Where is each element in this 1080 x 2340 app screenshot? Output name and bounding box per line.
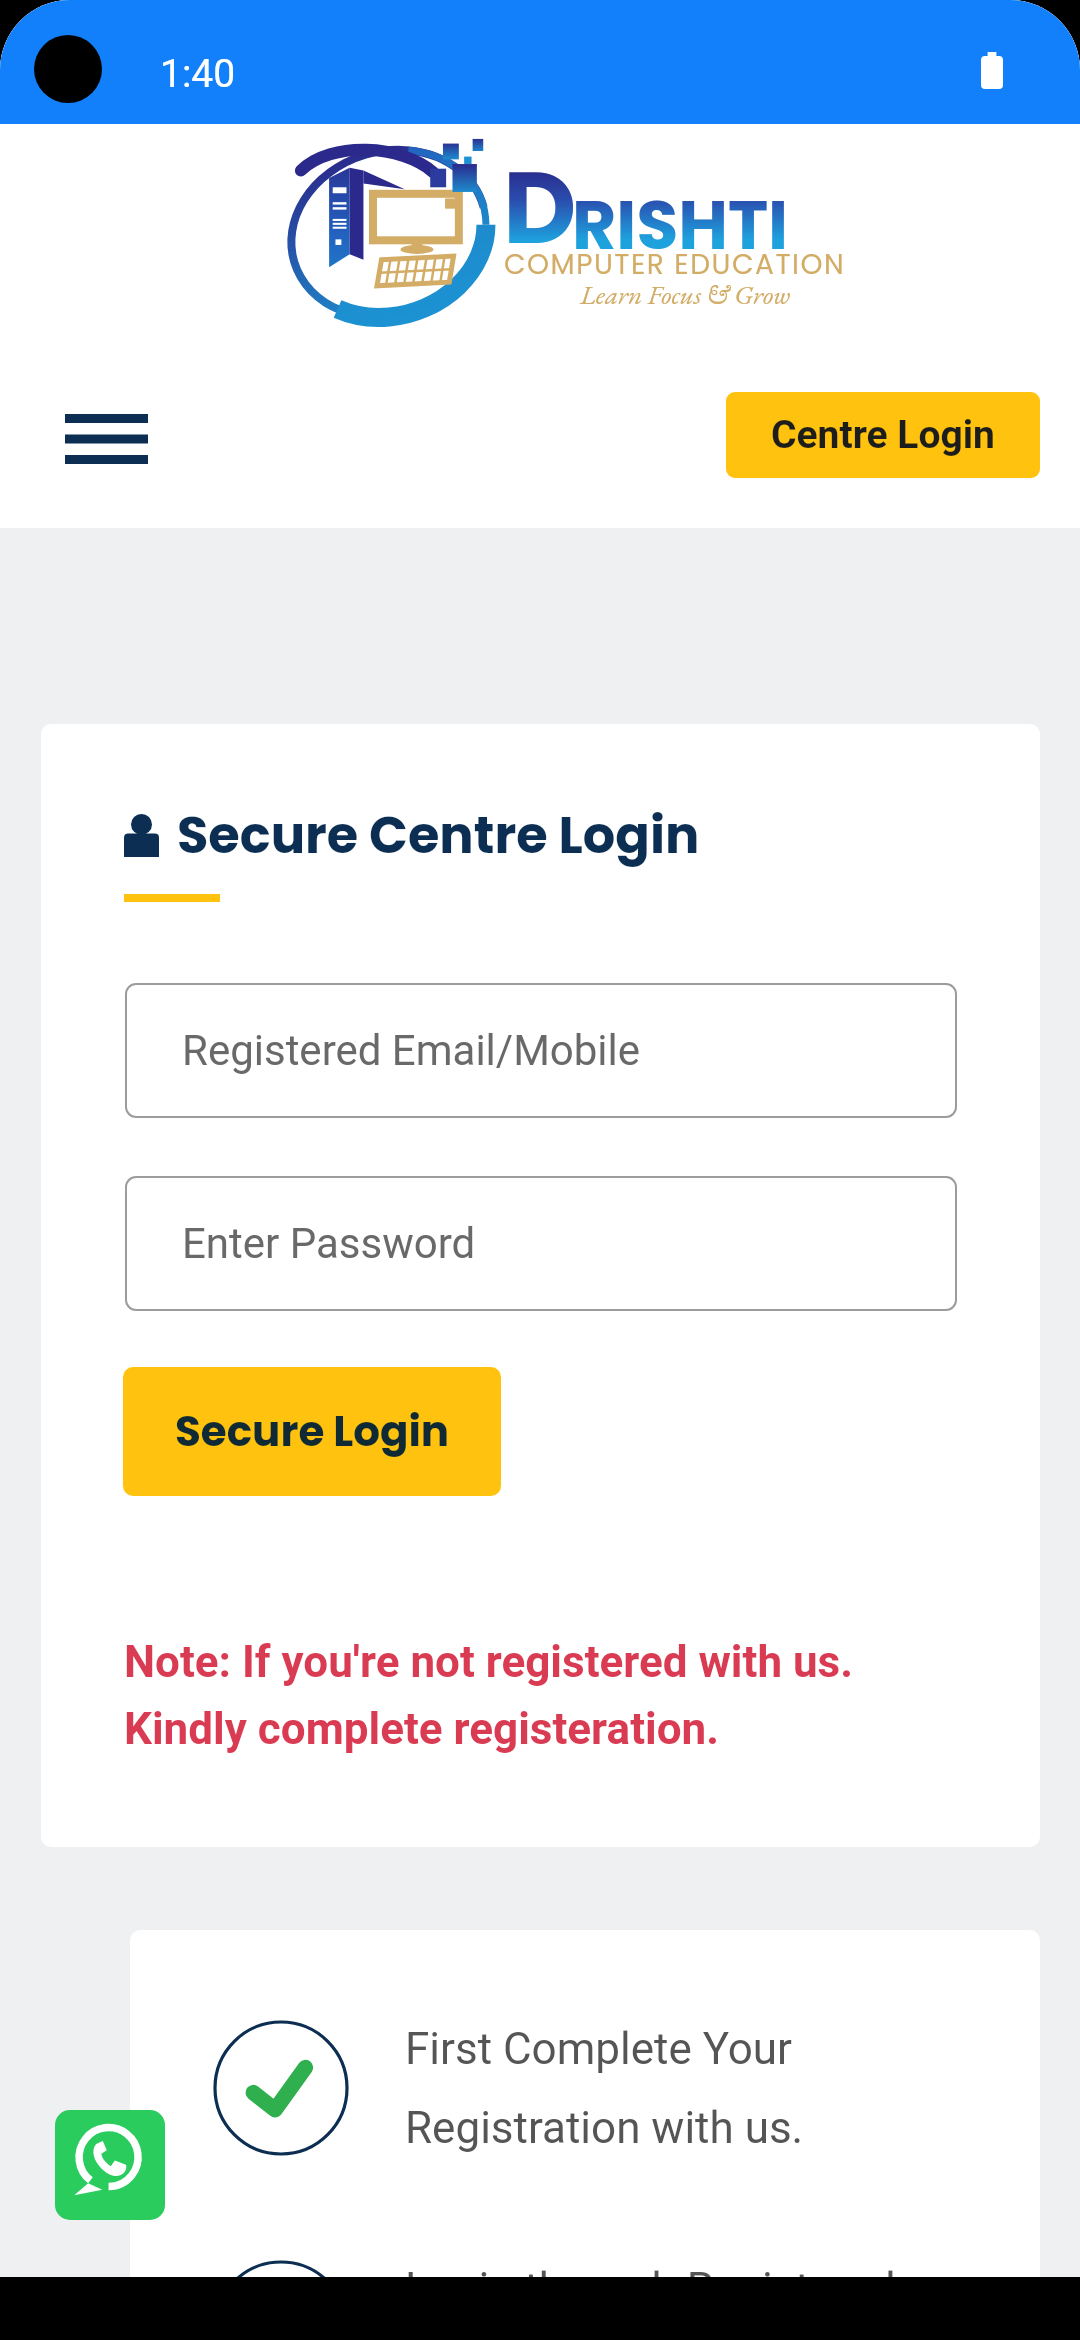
staticText: 1:40	[160, 51, 236, 97]
staticText: D	[503, 137, 577, 278]
staticText: COMPUTER EDUCATION	[504, 245, 846, 284]
button[interactable]: Centre Login	[726, 392, 1040, 478]
staticText: Registered Email/Mobile	[182, 1026, 641, 1075]
button[interactable]: Secure Login	[123, 1367, 501, 1496]
button[interactable]: Chat on WhatsApp	[55, 2110, 165, 2220]
staticText: Centre Login	[771, 412, 995, 458]
staticText: Learn Focus & Grow	[580, 277, 791, 312]
staticText: Login through Registered email id.	[405, 2263, 896, 2277]
staticText: Secure Login	[175, 1402, 450, 1461]
staticText: Enter Password	[182, 1219, 476, 1268]
staticText: Secure Centre Login	[177, 799, 700, 870]
staticText: Note: If you're not registered with us.	[124, 1636, 854, 1688]
staticText: RISHTI	[572, 178, 789, 273]
button[interactable]: Registered Email/Mobile	[125, 983, 957, 1118]
button[interactable]: Enter Password	[125, 1176, 957, 1311]
staticText: First Complete Your Registration with us…	[405, 2023, 804, 2153]
staticText: Kindly complete registeration.	[124, 1703, 719, 1755]
button[interactable]: Open navigation menu	[35, 384, 178, 494]
